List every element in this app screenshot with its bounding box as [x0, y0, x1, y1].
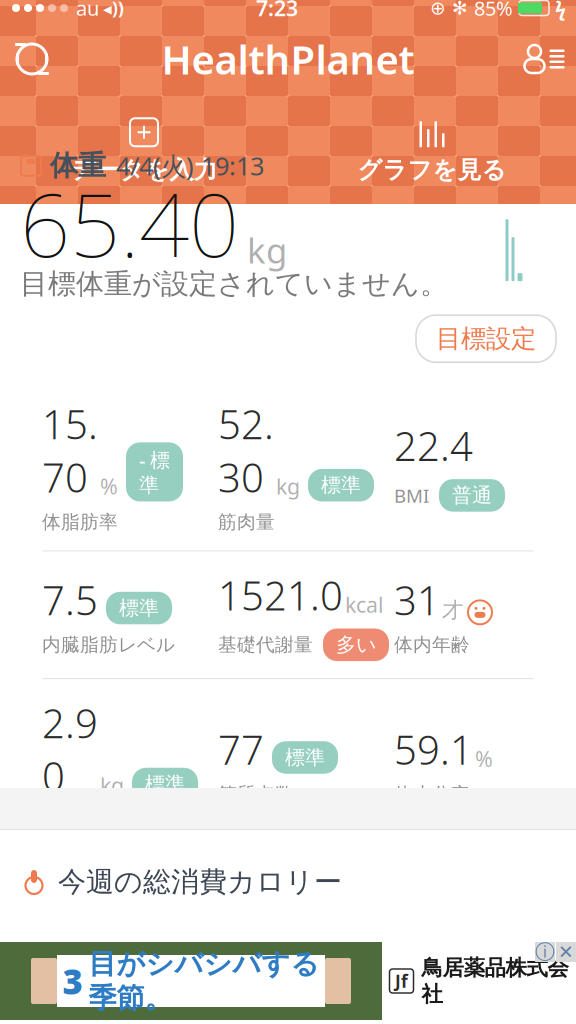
staticText: 59.1: [394, 723, 473, 776]
button[interactable]: ユーザー: [512, 29, 576, 89]
staticText: 内臓脂肪レベル: [42, 633, 175, 656]
staticText: 標準: [145, 772, 185, 796]
staticText: - 標準: [139, 446, 170, 497]
staticText: HealthPlanet: [161, 32, 414, 85]
staticText: 15.70: [42, 397, 98, 503]
button[interactable]: 目標設定: [416, 315, 556, 362]
staticText: 22.4: [394, 419, 473, 472]
staticText: 3: [62, 958, 82, 1004]
staticText: 4/4(火) 19:13: [116, 149, 264, 182]
staticText: 体内年齢: [394, 633, 470, 656]
staticText: ✕: [558, 941, 574, 963]
staticText: 今週の総消費カロリー: [58, 865, 342, 899]
staticText: 筋肉量: [218, 510, 275, 533]
staticText: ⊕: [430, 0, 446, 19]
staticText: 基礎代謝量: [218, 633, 313, 656]
button[interactable]: 広告: [0, 942, 576, 1020]
staticText: グラフを見る: [357, 155, 506, 185]
staticText: %: [475, 744, 493, 773]
staticText: 標準: [119, 596, 159, 620]
staticText: 普通: [452, 483, 492, 508]
staticText: ✻: [452, 0, 468, 19]
staticText: kg: [276, 472, 300, 500]
staticText: ◂)): [103, 0, 124, 19]
staticText: 目標体重が設定されていません。: [20, 267, 448, 301]
staticText: %: [100, 472, 118, 500]
staticText: ⓘ: [535, 940, 555, 964]
staticText: 2.90: [42, 696, 98, 802]
staticText: 筋質点数: [218, 783, 294, 806]
staticText: 7:23: [256, 0, 298, 22]
staticText: 鳥居薬品株式会社: [421, 955, 568, 1007]
staticText: BMI: [394, 483, 429, 508]
staticText: 才: [442, 597, 463, 623]
staticText: 1521.0: [218, 568, 343, 621]
staticText: ϟ: [555, 0, 566, 21]
staticText: データを入力: [70, 155, 217, 185]
staticText: 体水分率: [394, 783, 470, 806]
staticText: 77: [218, 723, 264, 776]
staticText: 体脂肪率: [42, 510, 118, 533]
staticText: 65.40: [20, 164, 239, 281]
staticText: 52.30: [218, 397, 274, 503]
staticText: 目がシバシバする季節。: [88, 947, 319, 1015]
staticText: 体重: [50, 148, 106, 183]
staticText: 85%: [474, 0, 513, 21]
staticText: 目標設定: [436, 323, 536, 354]
button[interactable]: グラフを見る: [288, 111, 576, 191]
staticText: au: [76, 0, 99, 21]
staticText: 31: [394, 573, 440, 626]
staticText: 標準: [285, 745, 325, 770]
button[interactable]: 同期: [0, 29, 64, 89]
staticText: 推定骨量: [42, 809, 118, 832]
button[interactable]: データを入力: [0, 111, 288, 191]
staticText: 多い: [336, 632, 376, 657]
staticText: kg: [100, 771, 124, 799]
staticText: 7.5: [42, 573, 98, 626]
staticText: 標準: [321, 473, 361, 497]
button[interactable]: 今週の総消費カロリー: [0, 830, 576, 934]
staticText: Jf: [395, 969, 408, 992]
staticText: kg: [247, 227, 287, 273]
staticText: kcal: [345, 590, 384, 618]
